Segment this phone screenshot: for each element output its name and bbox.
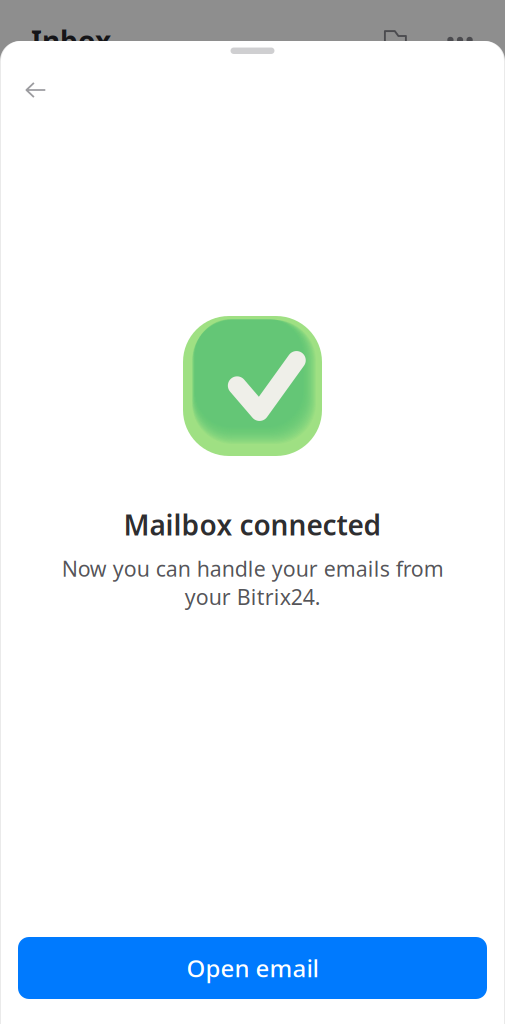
button[interactable]: Back [14, 68, 58, 112]
staticText: Inbox [31, 22, 111, 59]
button[interactable]: Open email [18, 937, 487, 999]
button[interactable]: Move to folder [384, 27, 407, 46]
staticText: Mailbox connected [123, 506, 381, 543]
staticText: Open email [186, 952, 318, 984]
staticText: Now you can handle your emails from your… [61, 554, 443, 611]
